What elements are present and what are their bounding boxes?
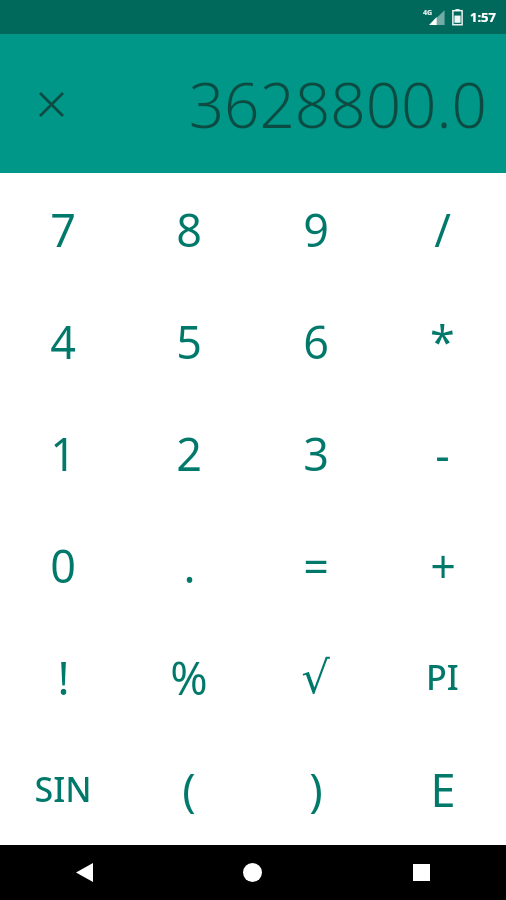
- staticText: 8: [176, 199, 202, 260]
- staticText: *: [430, 311, 455, 372]
- button[interactable]: SIN: [0, 733, 126, 845]
- button[interactable]: 0: [0, 509, 126, 621]
- staticText: 3: [303, 423, 329, 484]
- button[interactable]: /: [379, 173, 506, 285]
- staticText: (: [182, 759, 196, 820]
- button[interactable]: %: [126, 621, 252, 733]
- staticText: ): [309, 759, 323, 820]
- staticText: 7: [50, 199, 76, 260]
- staticText: %: [170, 647, 208, 708]
- button[interactable]: E: [379, 733, 506, 845]
- button[interactable]: +: [379, 509, 506, 621]
- staticText: !: [57, 647, 70, 708]
- button[interactable]: .: [126, 509, 252, 621]
- staticText: /: [434, 199, 451, 260]
- button[interactable]: *: [379, 285, 506, 397]
- staticText: .: [183, 535, 196, 596]
- staticText: 0: [50, 535, 76, 596]
- button[interactable]: 2: [126, 397, 252, 509]
- button[interactable]: Back: [0, 845, 168, 900]
- button[interactable]: Home: [168, 845, 337, 900]
- staticText: 6: [303, 311, 329, 372]
- button[interactable]: PI: [379, 621, 506, 733]
- button[interactable]: √: [252, 621, 379, 733]
- button[interactable]: 4: [0, 285, 126, 397]
- staticText: 1: [50, 423, 76, 484]
- staticText: -: [435, 423, 450, 484]
- button[interactable]: Clear: [27, 80, 75, 128]
- staticText: =: [303, 535, 329, 596]
- button[interactable]: -: [379, 397, 506, 509]
- button[interactable]: 6: [252, 285, 379, 397]
- button[interactable]: 3: [252, 397, 379, 509]
- staticText: PI: [426, 654, 459, 700]
- staticText: 1:57: [470, 8, 496, 26]
- staticText: 4G: [423, 8, 433, 18]
- staticText: 4: [50, 311, 76, 372]
- button[interactable]: !: [0, 621, 126, 733]
- button[interactable]: 8: [126, 173, 252, 285]
- button[interactable]: 9: [252, 173, 379, 285]
- button[interactable]: 1: [0, 397, 126, 509]
- staticText: E: [430, 759, 456, 820]
- button[interactable]: ): [252, 733, 379, 845]
- staticText: 3628800.0: [90, 62, 487, 146]
- button[interactable]: 5: [126, 285, 252, 397]
- staticText: √: [301, 651, 330, 703]
- staticText: 9: [303, 199, 329, 260]
- button[interactable]: Recent apps: [337, 845, 506, 900]
- staticText: 5: [176, 311, 202, 372]
- button[interactable]: (: [126, 733, 252, 845]
- staticText: SIN: [34, 766, 92, 812]
- staticText: 2: [176, 423, 202, 484]
- button[interactable]: 7: [0, 173, 126, 285]
- button[interactable]: =: [252, 509, 379, 621]
- staticText: +: [430, 535, 456, 596]
